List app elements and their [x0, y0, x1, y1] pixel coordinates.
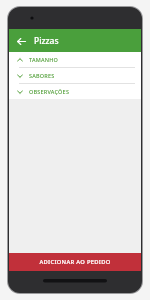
button[interactable]: TAMANHO [9, 52, 141, 67]
staticText: TAMANHO [29, 56, 59, 63]
staticText: OBSERVAÇÕES [29, 88, 70, 95]
button[interactable]: ADICIONAR AO PEDIDO [9, 253, 141, 271]
staticText: ADICIONAR AO PEDIDO [39, 258, 111, 266]
staticText: SABORES [29, 72, 55, 79]
staticText: Pizzas [34, 35, 59, 47]
button[interactable]: Back [13, 33, 29, 49]
button[interactable]: OBSERVAÇÕES [9, 84, 141, 99]
button[interactable]: SABORES [9, 68, 141, 83]
